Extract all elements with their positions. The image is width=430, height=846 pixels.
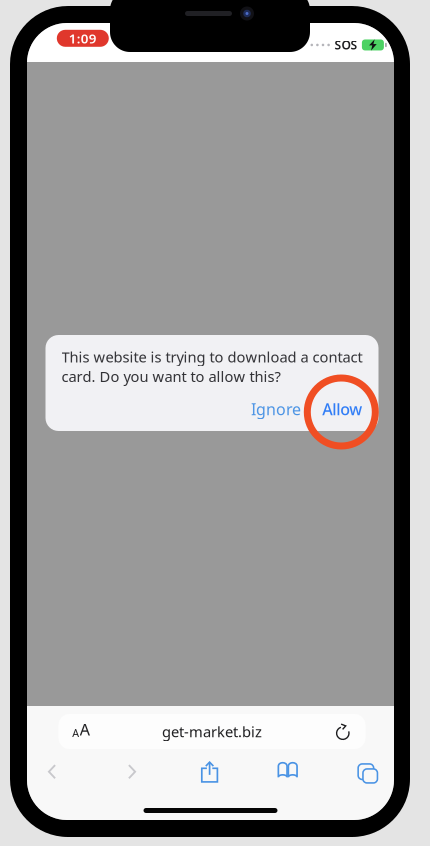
staticText: 1:09 — [69, 29, 97, 47]
staticText: get-market.biz — [162, 722, 262, 741]
button[interactable]: Tabs — [343, 750, 389, 794]
staticText: This website is trying to download a con… — [61, 347, 362, 386]
button[interactable]: Ignore — [246, 393, 306, 425]
staticText: Ignore — [251, 398, 301, 420]
button[interactable]: A — [58, 714, 365, 749]
staticText: SOS — [334, 37, 357, 53]
staticText: A — [80, 719, 90, 740]
staticText: A — [72, 726, 79, 740]
button[interactable]: Forward — [109, 750, 155, 794]
button[interactable]: Share — [186, 750, 232, 794]
button[interactable]: Allow — [313, 393, 371, 425]
staticText: Allow — [322, 398, 362, 420]
button[interactable]: Back — [29, 750, 75, 794]
button[interactable]: Bookmarks — [265, 750, 311, 794]
